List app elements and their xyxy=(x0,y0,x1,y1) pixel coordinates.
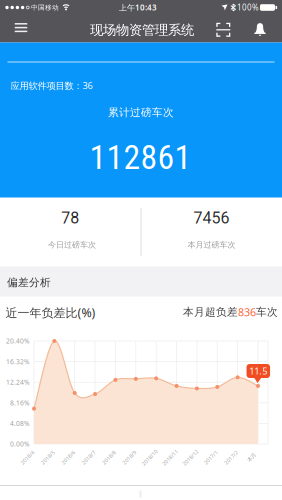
staticText: 112861 xyxy=(89,138,191,177)
staticText: 2017/2 xyxy=(223,454,240,461)
staticText: 2018/11 xyxy=(160,454,180,461)
staticText: 应用软件项目数：36 xyxy=(10,79,92,92)
staticText: 78 xyxy=(61,209,79,227)
staticText: 0.00% xyxy=(10,440,30,448)
button[interactable]: Notifications xyxy=(0,0,282,500)
staticText: 836 xyxy=(238,305,256,319)
staticText: 2018/5 xyxy=(39,454,56,461)
staticText: 2018/6 xyxy=(60,454,77,461)
staticText: 上午10:43 xyxy=(119,2,157,13)
button[interactable]: Scan xyxy=(0,0,282,500)
staticText: 2018/7 xyxy=(80,454,97,461)
staticText: 2018/4 xyxy=(19,454,36,461)
staticText: 8.16% xyxy=(10,398,30,407)
staticText: 11.5 xyxy=(249,365,267,377)
staticText: 7456 xyxy=(193,209,229,227)
staticText: 12.24% xyxy=(6,378,30,387)
staticText: 现场物资管理系统 xyxy=(90,22,194,38)
staticText: 今日过磅车次 xyxy=(48,240,96,250)
staticText: 20.40% xyxy=(6,337,30,345)
button[interactable]: Menu xyxy=(0,0,282,500)
staticText: 2017/1 xyxy=(202,454,219,461)
staticText: 本月超负差 xyxy=(183,305,238,318)
staticText: 2018/12 xyxy=(180,454,200,461)
staticText: 100% xyxy=(237,2,259,13)
staticText: 16.32% xyxy=(6,357,30,366)
staticText: 2018/10 xyxy=(140,454,160,461)
staticText: 本月过磅车次 xyxy=(187,240,235,250)
staticText: 近一年负差比(%) xyxy=(5,304,95,320)
staticText: 2018/8 xyxy=(100,454,117,461)
staticText: 中国移动 xyxy=(31,3,59,12)
staticText: 2018/9 xyxy=(121,454,138,461)
staticText: 车次 xyxy=(256,305,278,318)
staticText: 4.08% xyxy=(10,419,30,428)
staticText: 累计过磅车次 xyxy=(108,106,174,119)
staticText: 偏差分析 xyxy=(7,276,51,289)
staticText: 本月 xyxy=(246,454,256,461)
